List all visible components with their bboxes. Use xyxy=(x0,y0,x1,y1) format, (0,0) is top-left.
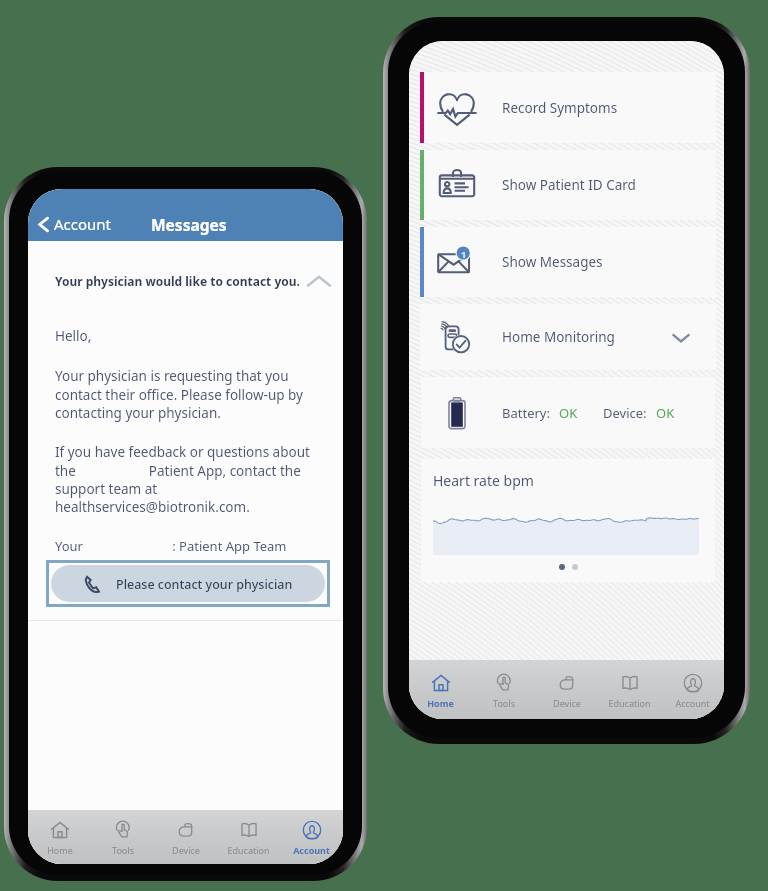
staticText: OK xyxy=(559,404,578,422)
button[interactable]: Account xyxy=(661,660,724,719)
button[interactable]: Tools xyxy=(472,660,535,719)
staticText: Tools xyxy=(493,697,515,709)
staticText: Device xyxy=(172,844,200,856)
staticText: Messages xyxy=(151,214,227,235)
button[interactable]: Heart rate bpm xyxy=(421,459,715,582)
staticText: Battery: xyxy=(502,404,550,422)
button[interactable]: Record Symptoms xyxy=(420,72,716,143)
button[interactable]: Home xyxy=(28,810,91,864)
button[interactable]: Device xyxy=(535,660,598,719)
staticText: Education xyxy=(227,844,270,856)
staticText: 1 xyxy=(461,248,467,261)
staticText: Account xyxy=(293,844,330,856)
other: Collapse message xyxy=(305,269,333,297)
staticText: Account xyxy=(54,214,112,234)
staticText: OK xyxy=(656,404,675,422)
button[interactable]: Tools xyxy=(91,810,154,864)
staticText: Your physician would like to contact you… xyxy=(55,273,305,289)
staticText: Device xyxy=(553,697,581,709)
button[interactable]: Please contact your physician xyxy=(51,565,325,602)
button[interactable]: Education xyxy=(217,810,280,864)
staticText: Education xyxy=(608,697,651,709)
staticText: Heart rate bpm xyxy=(433,471,534,490)
staticText: Record Symptoms xyxy=(502,99,716,117)
button[interactable]: Home xyxy=(409,660,472,719)
button[interactable]: Account xyxy=(280,810,343,864)
staticText: Home xyxy=(47,844,73,856)
button[interactable]: Home Monitoring xyxy=(420,304,716,370)
staticText: Device: xyxy=(603,404,647,422)
staticText: Home Monitoring xyxy=(502,328,670,346)
staticText: Your : Patient App Team xyxy=(55,537,287,555)
staticText: Show Messages xyxy=(502,253,716,271)
staticText: Account xyxy=(675,697,710,709)
staticText: Tools xyxy=(112,844,134,856)
staticText: Please contact your physician xyxy=(116,576,293,593)
staticText: Hello, xyxy=(55,327,92,345)
button[interactable]: Account xyxy=(28,208,122,240)
staticText: Your physician is requesting that you co… xyxy=(55,367,303,421)
staticText: If you have feedback or questions about … xyxy=(55,443,310,515)
staticText: Home xyxy=(427,697,454,709)
button[interactable]: Education xyxy=(598,660,661,719)
button[interactable]: 1 xyxy=(420,227,716,297)
staticText: Show Patient ID Card xyxy=(502,176,716,194)
button[interactable]: Your physician would like to contact you… xyxy=(28,241,343,301)
button[interactable]: Battery: xyxy=(421,377,715,448)
button[interactable]: Show Patient ID Card xyxy=(420,150,716,220)
button[interactable]: Device xyxy=(154,810,217,864)
